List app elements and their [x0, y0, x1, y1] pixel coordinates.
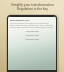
staticText: Simplify your transformation	[11, 3, 54, 7]
staticText: Morning flow	[25, 34, 39, 37]
staticText: Morning flow	[25, 38, 39, 41]
staticText: Morning flow	[25, 30, 39, 33]
staticText: Bodyweight only	[10, 18, 30, 21]
staticText: A short sequence that keeps the body mov…	[10, 22, 54, 28]
staticText: Regulation is the key	[17, 7, 48, 11]
